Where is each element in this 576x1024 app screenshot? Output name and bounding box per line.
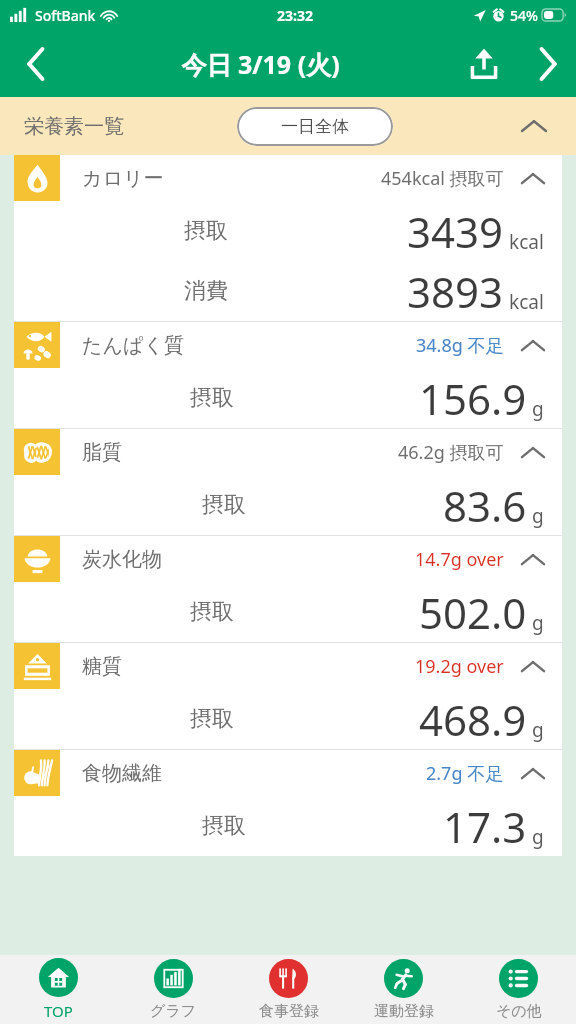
- staticText: 156.9: [419, 370, 527, 427]
- staticText: 23:32: [277, 6, 313, 25]
- staticText: 炭水化物: [82, 547, 162, 572]
- staticText: 食事登録: [259, 1002, 319, 1021]
- button[interactable]: カロリー: [14, 155, 562, 321]
- button[interactable]: 共有: [448, 30, 520, 97]
- other: 折りたたむ: [504, 536, 562, 582]
- staticText: g: [532, 503, 544, 529]
- staticText: 摂取: [202, 812, 246, 840]
- button[interactable]: 一日全体: [237, 107, 393, 146]
- staticText: たんぱく質: [82, 333, 184, 358]
- staticText: 3893: [407, 263, 504, 320]
- staticText: g: [532, 824, 544, 850]
- staticText: 摂取: [190, 598, 234, 626]
- staticText: 14.7g over: [415, 547, 504, 572]
- button[interactable]: 脂質: [14, 429, 562, 535]
- staticText: 摂取: [190, 384, 234, 412]
- staticText: 54%: [510, 6, 538, 25]
- button[interactable]: 栄養素一覧: [0, 97, 576, 155]
- staticText: 摂取: [190, 705, 234, 733]
- staticText: 502.0: [419, 584, 527, 641]
- staticText: SoftBank: [35, 6, 96, 25]
- staticText: 摂取: [184, 217, 228, 245]
- staticText: 摂取: [202, 491, 246, 519]
- button[interactable]: その他: [461, 955, 576, 1024]
- other: 折りたたむ: [504, 643, 562, 689]
- button[interactable]: 次の日: [520, 30, 576, 97]
- button[interactable]: TOP: [0, 955, 116, 1024]
- staticText: 脂質: [82, 440, 122, 465]
- button[interactable]: たんぱく質: [14, 322, 562, 428]
- staticText: g: [532, 610, 544, 636]
- staticText: 一日全体: [281, 116, 349, 137]
- staticText: 今日 3/19 (火): [181, 47, 340, 81]
- button[interactable]: 前の日: [0, 30, 72, 97]
- button[interactable]: 炭水化物: [14, 536, 562, 642]
- staticText: 34.8g 不足: [416, 333, 504, 358]
- button[interactable]: 糖質: [14, 643, 562, 749]
- other: 折りたたむ: [504, 750, 562, 796]
- staticText: 468.9: [419, 691, 527, 748]
- button[interactable]: 折りたたむ: [506, 97, 562, 155]
- staticText: 3439: [407, 203, 504, 260]
- staticText: 83.6: [443, 477, 527, 534]
- staticText: kcal: [509, 229, 544, 255]
- staticText: 46.2g 摂取可: [398, 440, 504, 465]
- button[interactable]: グラフ: [116, 955, 231, 1024]
- staticText: g: [532, 396, 544, 422]
- staticText: 2.7g 不足: [426, 761, 504, 786]
- staticText: 17.3: [443, 798, 527, 855]
- other: 折りたたむ: [504, 322, 562, 368]
- other: 折りたたむ: [504, 155, 562, 201]
- staticText: kcal: [509, 289, 544, 315]
- staticText: TOP: [44, 1001, 73, 1021]
- button[interactable]: 食事登録: [231, 955, 346, 1024]
- staticText: 消費: [184, 277, 228, 305]
- staticText: 食物繊維: [82, 761, 162, 786]
- staticText: 運動登録: [374, 1002, 434, 1021]
- staticText: 栄養素一覧: [24, 114, 124, 139]
- staticText: 454kcal 摂取可: [381, 166, 504, 191]
- button[interactable]: 食物繊維: [14, 750, 562, 856]
- staticText: その他: [496, 1002, 542, 1021]
- staticText: 19.2g over: [415, 654, 504, 679]
- button[interactable]: 運動登録: [346, 955, 461, 1024]
- other: 折りたたむ: [504, 429, 562, 475]
- staticText: グラフ: [150, 1002, 197, 1021]
- staticText: 糖質: [82, 654, 122, 679]
- staticText: g: [532, 717, 544, 743]
- staticText: カロリー: [82, 166, 164, 191]
